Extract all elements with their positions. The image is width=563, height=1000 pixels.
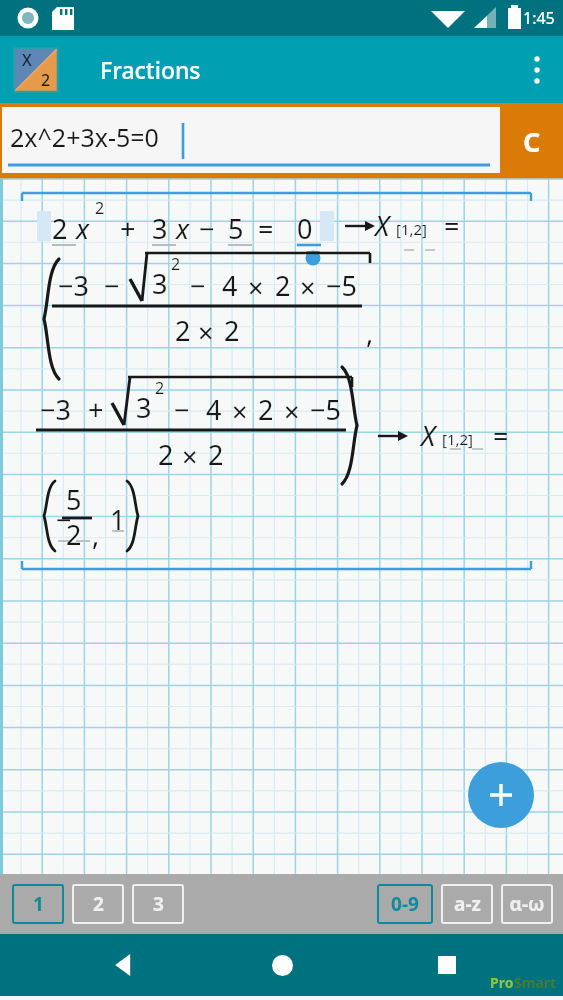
staticText: C xyxy=(523,123,541,160)
button[interactable]: 2 xyxy=(0,179,563,874)
button[interactable]: Recent apps xyxy=(423,941,471,989)
staticText: 0 xyxy=(297,210,313,247)
staticText: + xyxy=(120,210,136,247)
staticText: + xyxy=(88,391,104,428)
staticText: 2 xyxy=(171,253,181,275)
staticText: a-z xyxy=(454,891,481,917)
button[interactable]: 2x^2+3x-5=0 xyxy=(2,107,500,173)
staticText: 2 xyxy=(258,391,274,428)
staticText: 5 xyxy=(66,481,82,518)
staticText: 2 xyxy=(224,312,240,349)
staticText: × xyxy=(300,269,316,306)
staticText: −5 xyxy=(326,267,357,304)
staticText: Fractions xyxy=(100,54,201,85)
button[interactable]: Add xyxy=(468,762,534,828)
button[interactable]: 0-9 xyxy=(377,884,433,924)
button[interactable]: More options xyxy=(515,46,563,94)
staticText: 3 xyxy=(136,389,152,426)
button[interactable]: 2 xyxy=(72,884,124,924)
staticText: −3 xyxy=(58,267,89,304)
staticText: = xyxy=(444,207,460,244)
staticText: 2x^2+3x-5=0 xyxy=(10,120,159,154)
button[interactable]: Home xyxy=(258,941,306,989)
staticText: , xyxy=(366,314,374,351)
staticText: 2 xyxy=(95,197,105,219)
staticText: × xyxy=(284,393,300,430)
staticText: 0-9 xyxy=(391,891,419,917)
staticText: 3 xyxy=(153,891,164,917)
staticText: − xyxy=(56,501,72,538)
staticText: − xyxy=(104,267,120,304)
staticText: × xyxy=(248,269,264,306)
staticText: , xyxy=(92,516,100,553)
button[interactable]: Clear xyxy=(500,103,563,179)
staticText: 2 xyxy=(93,891,104,917)
staticText: 2 xyxy=(52,210,68,247)
staticText: × xyxy=(198,314,214,351)
button[interactable]: Back xyxy=(100,941,148,989)
staticText: α-ω xyxy=(509,891,545,917)
staticText: 2 xyxy=(275,267,291,304)
staticText: 1:45 xyxy=(523,7,555,29)
staticText: X xyxy=(22,49,32,71)
button[interactable]: 3 xyxy=(132,884,184,924)
staticText: 2 xyxy=(66,516,82,553)
staticText: 2 xyxy=(175,312,191,349)
staticText: = xyxy=(493,417,509,454)
staticText: 3 xyxy=(152,210,168,247)
staticText: 2 xyxy=(41,69,51,91)
staticText: X xyxy=(421,417,436,454)
button[interactable]: a-z xyxy=(441,884,493,924)
staticText: − xyxy=(190,267,206,304)
staticText: 4 xyxy=(222,267,238,304)
staticText: 1 xyxy=(33,891,44,917)
staticText: Pro xyxy=(490,973,514,992)
staticText: = xyxy=(258,210,274,247)
staticText: 2 xyxy=(158,436,174,473)
staticText: − xyxy=(199,210,215,247)
staticText: X xyxy=(375,207,390,244)
staticText: Smart xyxy=(514,973,557,992)
button[interactable]: α-ω xyxy=(501,884,553,924)
staticText: −3 xyxy=(40,391,71,428)
staticText: [1,2] xyxy=(396,219,428,239)
staticText: 4 xyxy=(206,391,222,428)
staticText: 1 xyxy=(110,501,126,538)
staticText: × xyxy=(182,438,198,475)
staticText: 2 xyxy=(208,436,224,473)
button[interactable]: 1 xyxy=(12,884,64,924)
staticText: − xyxy=(174,391,190,428)
staticText: x xyxy=(176,210,190,247)
staticText: × xyxy=(232,393,248,430)
staticText: 2 xyxy=(155,377,165,399)
staticText: x xyxy=(76,210,90,247)
button[interactable]: App icon xyxy=(12,46,60,94)
staticText: 5 xyxy=(228,210,244,247)
staticText: 3 xyxy=(152,265,168,302)
staticText: [1,2] xyxy=(442,429,474,449)
staticText: −5 xyxy=(310,391,341,428)
